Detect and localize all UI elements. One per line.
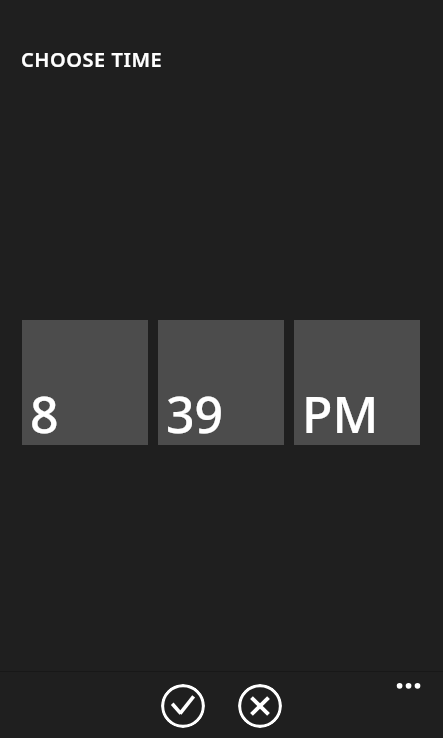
staticText: 39 [166,380,224,448]
staticText: CHOOSE TIME [21,46,163,73]
staticText: 8 [30,380,59,448]
button[interactable]: 8 [22,320,148,445]
button[interactable]: More options [399,672,443,702]
button[interactable]: Cancel [238,684,282,728]
button[interactable]: Accept [161,684,205,728]
button[interactable]: PM [294,320,420,445]
staticText: PM [302,380,379,448]
button[interactable]: 39 [158,320,284,445]
